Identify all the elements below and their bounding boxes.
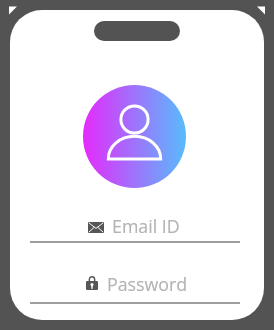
button[interactable]: Email ID [10,214,264,253]
staticText: Password [107,272,188,296]
button[interactable]: Password [10,268,264,314]
other: Profile avatar [83,85,186,188]
staticText: Email ID [112,214,180,238]
